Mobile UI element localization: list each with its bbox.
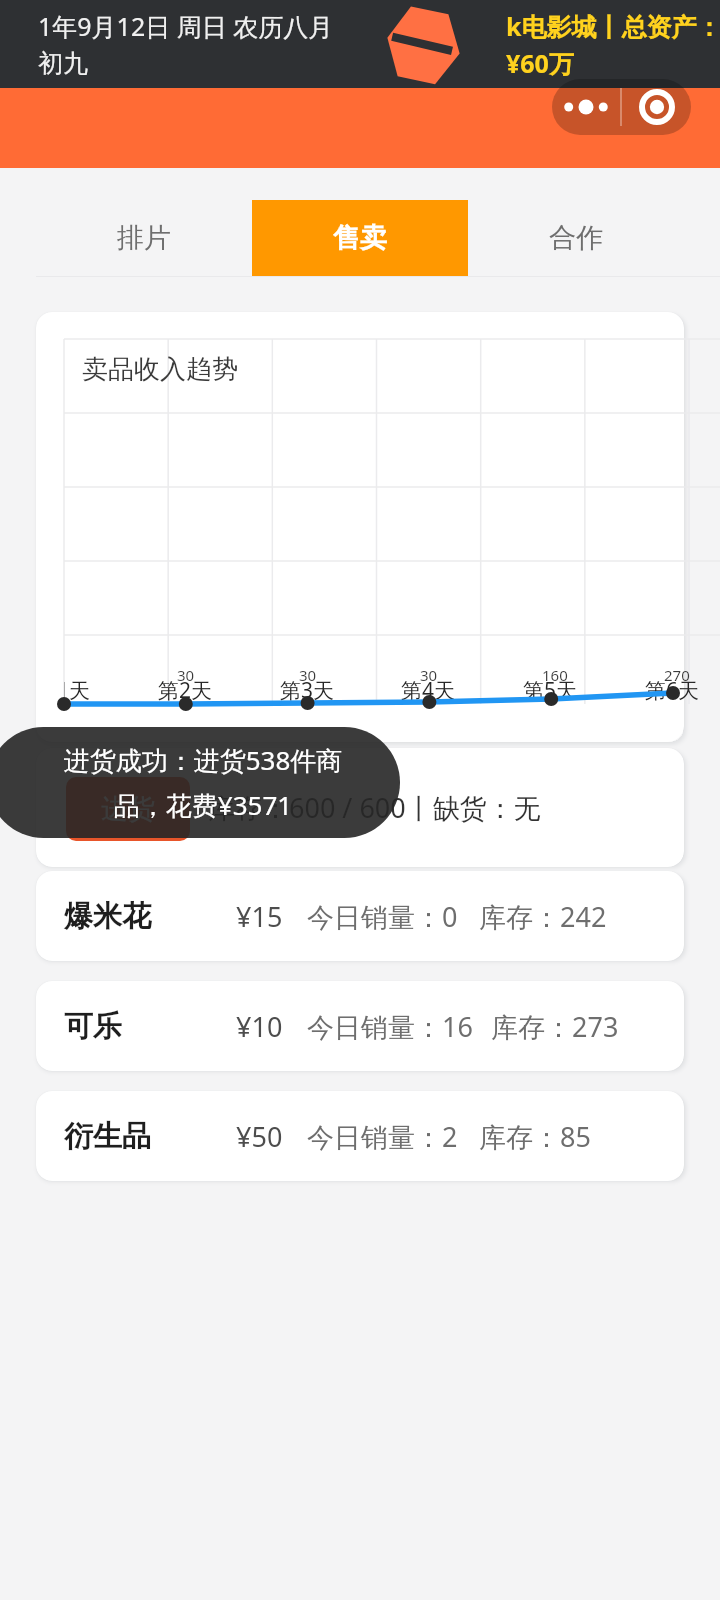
button[interactable]: 排片 — [36, 200, 252, 276]
button[interactable]: 衍生品 — [36, 1091, 684, 1181]
staticText: k电影城丨总资产：¥60万 — [506, 9, 720, 81]
staticText: 第4天 — [401, 676, 456, 705]
staticText: 第1天 — [64, 676, 91, 705]
staticText: 1年9月12日 周日 农历八月初九 — [38, 9, 338, 79]
button[interactable]: 售卖 — [252, 200, 468, 276]
staticText: 第3天 — [280, 676, 335, 705]
staticText: 库存：273 — [491, 1008, 619, 1045]
staticText: 30 — [177, 665, 195, 685]
staticText: ¥50 — [236, 1118, 283, 1155]
button[interactable]: Close — [622, 79, 691, 135]
staticText: 第2天 — [158, 676, 213, 705]
staticText: 卖品收入趋势 — [82, 353, 238, 386]
staticText: 今日销量：2 — [307, 1118, 458, 1155]
staticText: 衍生品 — [64, 1118, 151, 1155]
staticText: 进货 — [101, 792, 155, 826]
button[interactable]: 合作 — [468, 200, 684, 276]
staticText: 可乐 — [64, 1008, 122, 1045]
staticText: 第5天 — [523, 676, 578, 705]
staticText: 进货成功：进货538件商品，花费¥3571 — [58, 742, 348, 822]
staticText: ¥10 — [236, 1008, 283, 1045]
staticText: 30 — [420, 665, 438, 685]
staticText: 售卖 — [333, 221, 387, 255]
staticText: 库存：600 / 600丨缺货：无 — [208, 789, 541, 826]
staticText: 今日销量：16 — [307, 1008, 473, 1045]
staticText: 排片 — [117, 221, 171, 255]
staticText: 270 — [664, 665, 690, 685]
staticText: 今日销量：0 — [307, 898, 458, 935]
staticText: 合作 — [549, 221, 603, 255]
button[interactable]: 爆米花 — [36, 871, 684, 961]
staticText: 库存：85 — [479, 1118, 591, 1155]
button[interactable]: More options — [552, 79, 620, 135]
staticText: 30 — [299, 665, 317, 685]
staticText: ¥15 — [236, 898, 283, 935]
button[interactable]: 进货 — [66, 777, 190, 841]
button[interactable]: 可乐 — [36, 981, 684, 1071]
staticText: 库存：242 — [479, 898, 607, 935]
staticText: 第6天 — [645, 676, 700, 705]
staticText: 爆米花 — [64, 898, 151, 935]
staticText: 160 — [542, 665, 568, 685]
